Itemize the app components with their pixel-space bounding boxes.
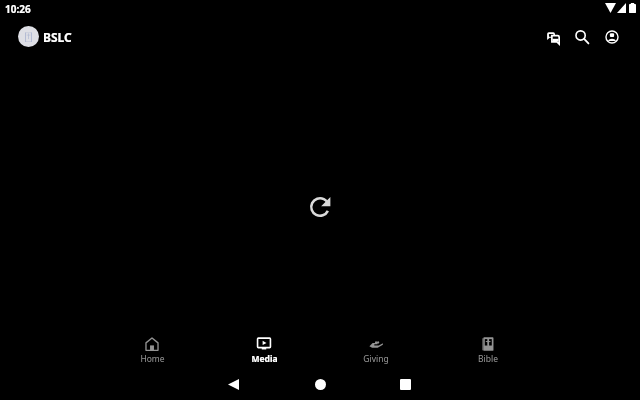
button[interactable]: Giving bbox=[320, 333, 432, 363]
staticText: Giving bbox=[363, 353, 389, 365]
button[interactable]: Recent apps bbox=[393, 372, 417, 396]
button[interactable]: Back bbox=[221, 372, 245, 396]
button[interactable]: Search bbox=[570, 25, 594, 49]
staticText: BSLC bbox=[43, 29, 72, 45]
button[interactable]: Home bbox=[308, 372, 332, 396]
button[interactable]: BSLC bbox=[14, 22, 78, 51]
button[interactable]: Messages bbox=[541, 25, 565, 49]
button[interactable]: Home bbox=[96, 333, 208, 363]
staticText: Media bbox=[251, 353, 278, 365]
button[interactable]: Bible bbox=[432, 333, 544, 363]
staticText: Home bbox=[140, 353, 165, 365]
staticText: Bible bbox=[478, 353, 498, 365]
button[interactable]: Media bbox=[208, 333, 320, 363]
button[interactable]: Account bbox=[600, 25, 624, 49]
staticText: 10:26 bbox=[5, 2, 31, 16]
